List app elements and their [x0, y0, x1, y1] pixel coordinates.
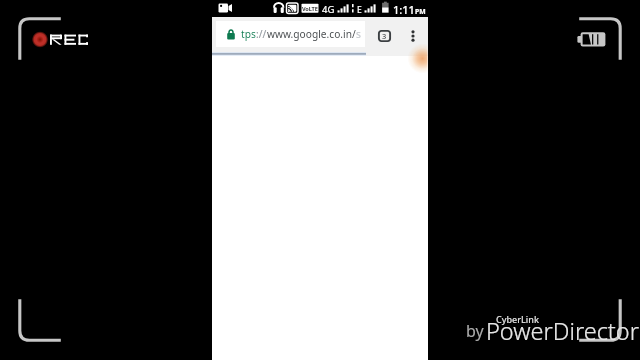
staticText: www.google.co.in/ [267, 27, 356, 41]
staticText: CyberLink [496, 313, 539, 325]
button[interactable]: tps [216, 21, 365, 47]
staticText: VoLTE [302, 5, 318, 13]
other: Battery [577, 31, 607, 48]
staticText: PM [415, 7, 426, 16]
staticText: by [466, 320, 484, 342]
staticText: 1:11 [393, 2, 415, 17]
staticText: E [357, 4, 362, 16]
staticText: tps [241, 27, 256, 41]
staticText: 4G [322, 3, 335, 16]
button[interactable]: Switch tabs, 3 open [378, 30, 391, 42]
staticText: PowerDirector [486, 315, 639, 347]
staticText: :// [256, 27, 267, 41]
staticText: s [356, 27, 361, 41]
button[interactable]: More options [405, 28, 421, 44]
staticText: 3 [382, 31, 387, 41]
